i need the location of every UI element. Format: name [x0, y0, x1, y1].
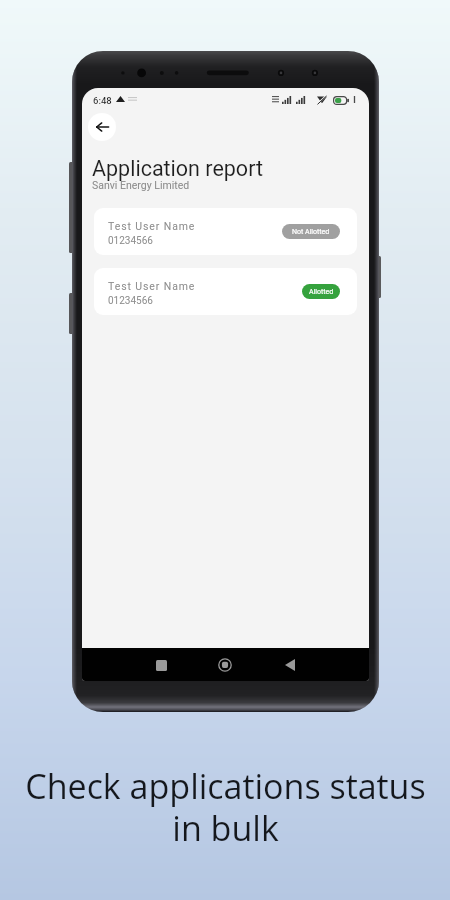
- staticText: Not Allotted: [292, 228, 330, 236]
- staticText: Test User Name: [108, 220, 196, 232]
- staticText: Sanvi Energy Limited: [92, 179, 190, 191]
- staticText: Allotted: [309, 288, 334, 296]
- button[interactable]: Recent apps: [148, 652, 174, 678]
- button[interactable]: Back: [88, 113, 116, 141]
- staticText: Test User Name: [108, 280, 196, 292]
- staticText: 6:48: [93, 95, 112, 106]
- button[interactable]: Test User Name: [94, 208, 357, 255]
- staticText: 01234566: [108, 295, 153, 307]
- staticText: Check applications status in bulk: [25, 763, 426, 851]
- staticText: 01234566: [108, 235, 153, 247]
- button[interactable]: Back: [277, 652, 303, 678]
- staticText: Application report: [92, 156, 263, 181]
- button[interactable]: Home: [212, 652, 238, 678]
- button[interactable]: Test User Name: [94, 268, 357, 315]
